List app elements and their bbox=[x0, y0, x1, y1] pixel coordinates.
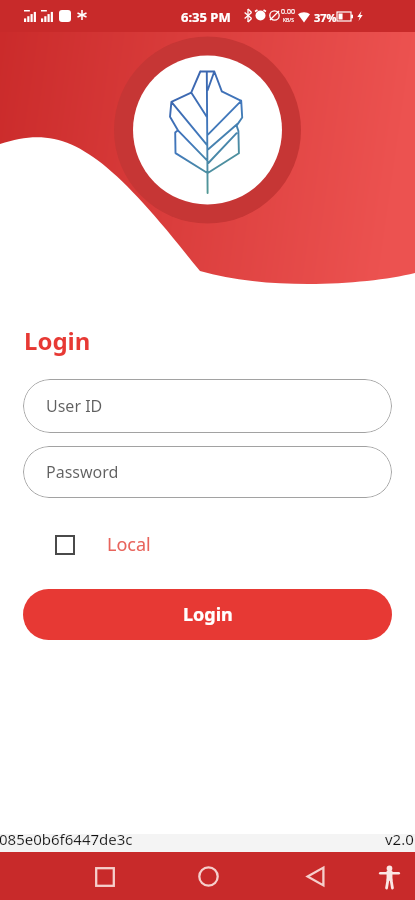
button[interactable]: Local bbox=[107, 532, 151, 557]
staticText: 37% bbox=[314, 10, 337, 25]
button[interactable]: Accessibility bbox=[368, 855, 411, 898]
staticText: v2.0 bbox=[385, 829, 414, 849]
button[interactable]: Back bbox=[294, 855, 337, 898]
staticText: Login bbox=[183, 602, 233, 627]
button[interactable]: User ID bbox=[23, 379, 392, 433]
staticText: 6:35 PM bbox=[181, 8, 231, 26]
button[interactable]: Recent apps bbox=[83, 855, 126, 898]
staticText: KB/S bbox=[283, 17, 294, 24]
staticText: User ID bbox=[46, 395, 103, 417]
button[interactable]: Login bbox=[23, 589, 392, 640]
staticText: Password bbox=[46, 461, 119, 483]
button[interactable]: Password bbox=[23, 446, 392, 498]
button[interactable]: Home bbox=[187, 855, 230, 898]
staticText: 0.00 bbox=[281, 7, 295, 17]
staticText: Login bbox=[24, 324, 91, 357]
staticText: 085e0b6f6447de3c bbox=[0, 829, 133, 849]
button[interactable]: Local checkbox bbox=[55, 535, 75, 555]
